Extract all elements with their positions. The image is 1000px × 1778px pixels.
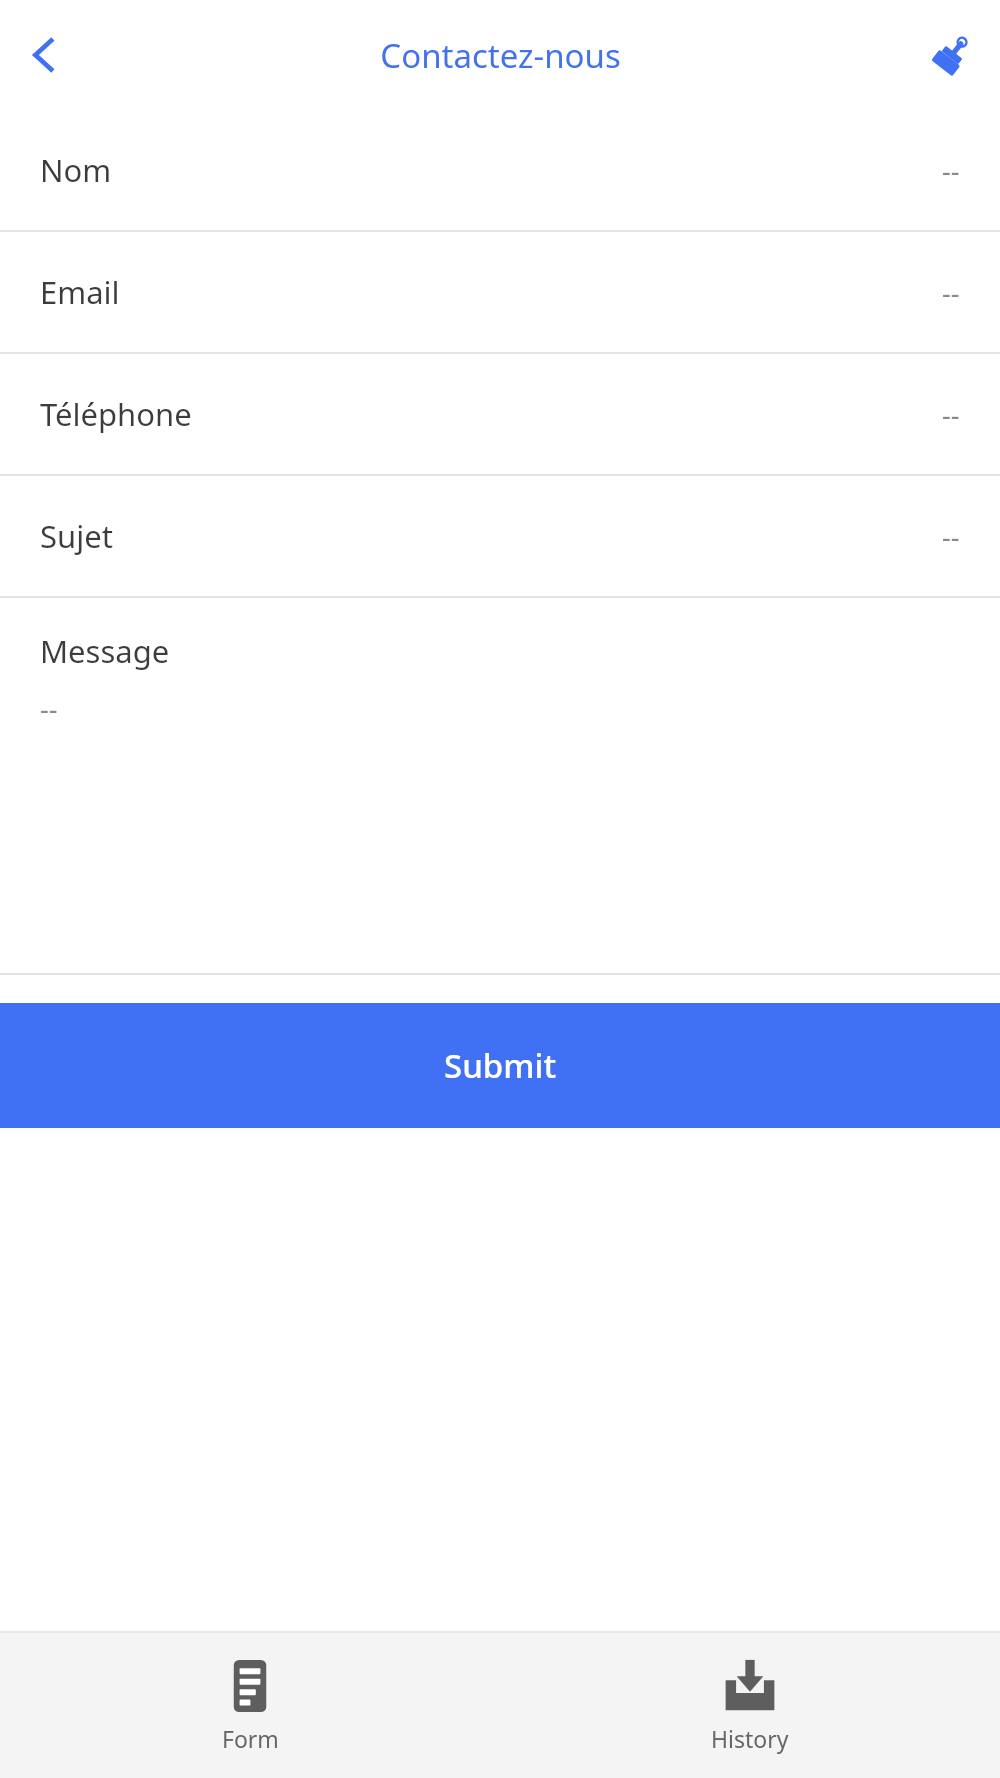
staticText: Téléphone (40, 393, 192, 435)
staticText: -- (40, 690, 58, 727)
button[interactable]: Sujet (0, 476, 1000, 596)
staticText: -- (942, 518, 960, 555)
button[interactable]: Back (8, 19, 80, 91)
staticText: Message (40, 630, 170, 672)
button[interactable]: Form (0, 1633, 500, 1778)
staticText: -- (942, 274, 960, 311)
staticText: Submit (444, 1043, 557, 1088)
staticText: -- (942, 152, 960, 189)
staticText: History (711, 1723, 789, 1754)
staticText: Contactez-nous (380, 33, 621, 78)
staticText: Nom (40, 149, 112, 191)
staticText: Email (40, 271, 120, 313)
button[interactable]: Email (0, 232, 1000, 352)
staticText: Form (222, 1723, 279, 1754)
staticText: -- (942, 396, 960, 433)
button[interactable]: Theme (916, 19, 988, 91)
staticText: Sujet (40, 515, 113, 557)
button[interactable]: Message (0, 598, 1000, 973)
button[interactable]: History (500, 1633, 1000, 1778)
button[interactable]: Nom (0, 110, 1000, 230)
button[interactable]: Téléphone (0, 354, 1000, 474)
button[interactable]: Submit (0, 1003, 1000, 1128)
